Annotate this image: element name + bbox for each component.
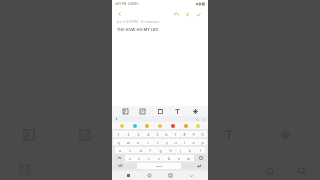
staticText: r — [147, 140, 149, 145]
staticText: f — [149, 148, 151, 153]
button[interactable]: z — [125, 155, 134, 161]
button[interactable]: o — [189, 139, 198, 145]
button[interactable]: ABC — [113, 163, 128, 169]
staticText: z — [129, 156, 131, 161]
button[interactable]: , — [128, 163, 137, 169]
staticText: THE HOW HO MY LIFE — [117, 27, 159, 32]
staticText: g — [159, 148, 162, 153]
button[interactable]: j — [175, 147, 185, 153]
button[interactable]: Redo — [183, 10, 191, 18]
button[interactable]: t — [153, 139, 162, 145]
button[interactable]: 0 — [198, 131, 207, 137]
button[interactable]: f — [145, 147, 155, 153]
staticText: x — [138, 156, 140, 161]
staticText: h — [169, 148, 172, 153]
staticText: i — [184, 140, 185, 145]
staticText: 8 — [183, 132, 186, 137]
button[interactable]: Recents — [166, 171, 175, 180]
button[interactable]: More — [191, 107, 200, 116]
staticText: 4 — [147, 132, 150, 137]
button[interactable]: y — [162, 139, 171, 145]
staticText: , — [132, 164, 133, 168]
button[interactable]: Back — [124, 171, 133, 180]
button[interactable]: 3 — [133, 131, 143, 137]
staticText: w — [127, 140, 130, 145]
button[interactable]: r — [143, 139, 153, 145]
staticText: Jun 12 4:09 PM 12 characters — [117, 20, 160, 24]
button[interactable]: x — [134, 155, 144, 161]
button[interactable]: p — [198, 139, 207, 145]
button[interactable]: b — [164, 155, 174, 161]
staticText: ABC — [118, 164, 124, 168]
button[interactable]: Emoji — [170, 123, 176, 129]
staticText: 4:09 PM 0.4KB/s — [115, 2, 139, 6]
staticText: n — [178, 156, 181, 161]
button[interactable]: Voice — [115, 118, 118, 121]
staticText: 9 — [192, 132, 195, 137]
button[interactable]: 7 — [171, 131, 180, 137]
button[interactable]: g — [155, 147, 165, 153]
staticText: c — [148, 156, 150, 161]
button[interactable]: Emoji — [144, 123, 150, 129]
staticText: j — [180, 148, 181, 153]
button[interactable]: 5 — [153, 131, 162, 137]
button[interactable]: v — [154, 155, 164, 161]
staticText: 2 — [127, 132, 130, 137]
button[interactable]: Shift — [113, 154, 125, 162]
staticText: s — [129, 148, 131, 153]
button[interactable]: GIF — [138, 107, 147, 116]
button[interactable]: d — [135, 147, 145, 153]
staticText: l — [200, 148, 201, 153]
button[interactable]: Undo — [172, 10, 180, 18]
button[interactable]: 2 — [123, 131, 133, 137]
button[interactable]: 1 — [113, 131, 123, 137]
staticText: 7 — [174, 132, 177, 137]
button[interactable]: Back — [116, 10, 124, 18]
button[interactable]: Home — [145, 171, 154, 180]
staticText: d — [139, 148, 142, 153]
button[interactable]: u — [171, 139, 180, 145]
button[interactable]: s — [125, 147, 135, 153]
button[interactable]: 9 — [189, 131, 198, 137]
button[interactable]: 6 — [162, 131, 171, 137]
staticText: m — [187, 156, 191, 161]
button[interactable]: n — [174, 155, 184, 161]
button[interactable]: w — [123, 139, 133, 145]
button[interactable]: Emoji — [119, 123, 125, 129]
staticText: 3 — [137, 132, 140, 137]
staticText: 6 — [165, 132, 168, 137]
staticText: b — [168, 156, 171, 161]
button[interactable]: k — [185, 147, 195, 153]
staticText: t — [157, 140, 159, 145]
button[interactable]: m — [184, 155, 194, 161]
button[interactable]: Emoji — [132, 123, 138, 129]
staticText: 5 — [156, 132, 159, 137]
button[interactable]: Emoji — [157, 123, 163, 129]
staticText: . — [186, 164, 187, 168]
button[interactable]: h — [165, 147, 175, 153]
button[interactable]: Hide keyboard — [187, 171, 196, 180]
button[interactable]: a — [115, 147, 125, 153]
button[interactable]: Emoji — [195, 123, 201, 129]
staticText: v — [158, 156, 160, 161]
staticText: 0 — [201, 132, 204, 137]
button[interactable]: i — [180, 139, 189, 145]
button[interactable]: Clipboard — [156, 107, 165, 116]
button[interactable]: Backspace — [194, 154, 207, 162]
button[interactable]: q — [113, 139, 123, 145]
button[interactable]: Emoji — [183, 123, 189, 129]
button[interactable]: Space — [137, 163, 181, 169]
button[interactable]: Enter — [191, 163, 207, 169]
button[interactable]: l — [195, 147, 205, 153]
button[interactable]: c — [144, 155, 154, 161]
button[interactable]: Done — [194, 10, 202, 18]
staticText: p — [201, 140, 204, 145]
button[interactable]: Text mode — [173, 107, 182, 116]
button[interactable]: 8 — [180, 131, 189, 137]
staticText: q — [117, 140, 120, 145]
button[interactable]: e — [133, 139, 143, 145]
button[interactable]: Stickers — [121, 107, 130, 116]
button[interactable]: 4 — [143, 131, 153, 137]
staticText: y — [166, 140, 168, 145]
